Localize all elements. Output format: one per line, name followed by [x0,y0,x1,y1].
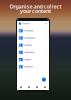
staticText: Organise and collect [9,3,61,10]
button[interactable] [17,42,49,49]
button[interactable] [17,56,49,63]
button[interactable] [17,27,49,34]
staticText: your content [20,7,51,15]
button[interactable]: Share [41,85,49,90]
button[interactable] [17,63,49,70]
button[interactable]: Circle [25,85,33,90]
button[interactable]: Files [33,85,41,90]
button[interactable]: Play [17,85,25,90]
button[interactable]: New item [42,77,46,82]
button[interactable] [17,49,49,56]
button[interactable] [17,34,49,42]
